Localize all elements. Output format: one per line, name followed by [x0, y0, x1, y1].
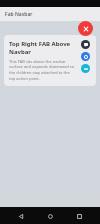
staticText: Top Right FAB Above Navbar: [9, 40, 91, 56]
button[interactable]: Add: [81, 52, 90, 61]
button[interactable]: Home: [42, 208, 58, 224]
button[interactable]: Edit: [81, 64, 90, 73]
staticText: Fab Navbar: [5, 11, 33, 18]
button[interactable]: Recents: [71, 208, 87, 224]
button[interactable]: Back: [13, 208, 29, 224]
staticText: This FAB sits above the navbar surface a…: [9, 59, 75, 81]
button[interactable]: Top Right FAB Above Navbar: [4, 35, 96, 86]
button[interactable]: Messages: [81, 40, 90, 49]
button[interactable]: Close actions: [78, 21, 93, 36]
